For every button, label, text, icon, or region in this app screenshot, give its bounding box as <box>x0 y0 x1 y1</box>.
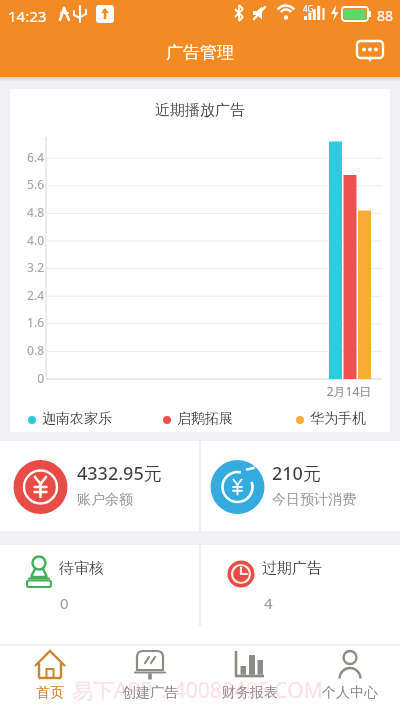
staticText: 首页 <box>0 684 100 702</box>
staticText: 账户余额 <box>77 491 133 509</box>
staticText: 6.4 <box>10 149 44 165</box>
staticText: 0.8 <box>10 342 44 358</box>
staticText: 过期广告 <box>262 559 322 578</box>
button[interactable] <box>0 441 200 531</box>
button[interactable] <box>357 41 385 65</box>
staticText: 启鹅拓展 <box>177 410 233 428</box>
button[interactable] <box>0 545 200 626</box>
button[interactable] <box>200 645 300 711</box>
staticText: 4332.95元 <box>77 461 162 486</box>
staticText: 1.6 <box>10 314 44 330</box>
staticText: 4.8 <box>10 204 44 220</box>
staticText: 创建广告 <box>100 684 200 702</box>
staticText: 4 <box>264 593 273 613</box>
staticText: 近期播放广告 <box>10 101 390 120</box>
button[interactable] <box>200 441 400 531</box>
button[interactable] <box>100 645 200 711</box>
button[interactable] <box>0 645 100 711</box>
staticText: 易下APP：40088495.COM <box>72 676 323 705</box>
staticText: 今日预计消费 <box>272 491 356 509</box>
staticText: 2.4 <box>10 287 44 303</box>
staticText: 210元 <box>272 461 321 486</box>
staticText: 广告管理 <box>0 42 400 63</box>
staticText: 14:23 <box>8 6 47 26</box>
staticText: 迦南农家乐 <box>42 410 112 428</box>
staticText: 4.0 <box>10 232 44 248</box>
staticText: 华为手机 <box>310 410 366 428</box>
staticText: 待审核 <box>59 559 104 578</box>
staticText: 3.2 <box>10 259 44 275</box>
button[interactable] <box>300 645 400 711</box>
staticText: 4G <box>303 3 314 14</box>
staticText: 财务报表 <box>200 684 300 702</box>
staticText: 2月14日 <box>324 383 374 399</box>
staticText: 0 <box>10 370 44 386</box>
staticText: 88 <box>377 6 394 25</box>
button[interactable]: 广告管理 <box>0 30 400 77</box>
staticText: 5.6 <box>10 176 44 192</box>
staticText: 0 <box>60 593 69 613</box>
button[interactable] <box>200 545 400 626</box>
staticText: 个人中心 <box>300 684 400 702</box>
